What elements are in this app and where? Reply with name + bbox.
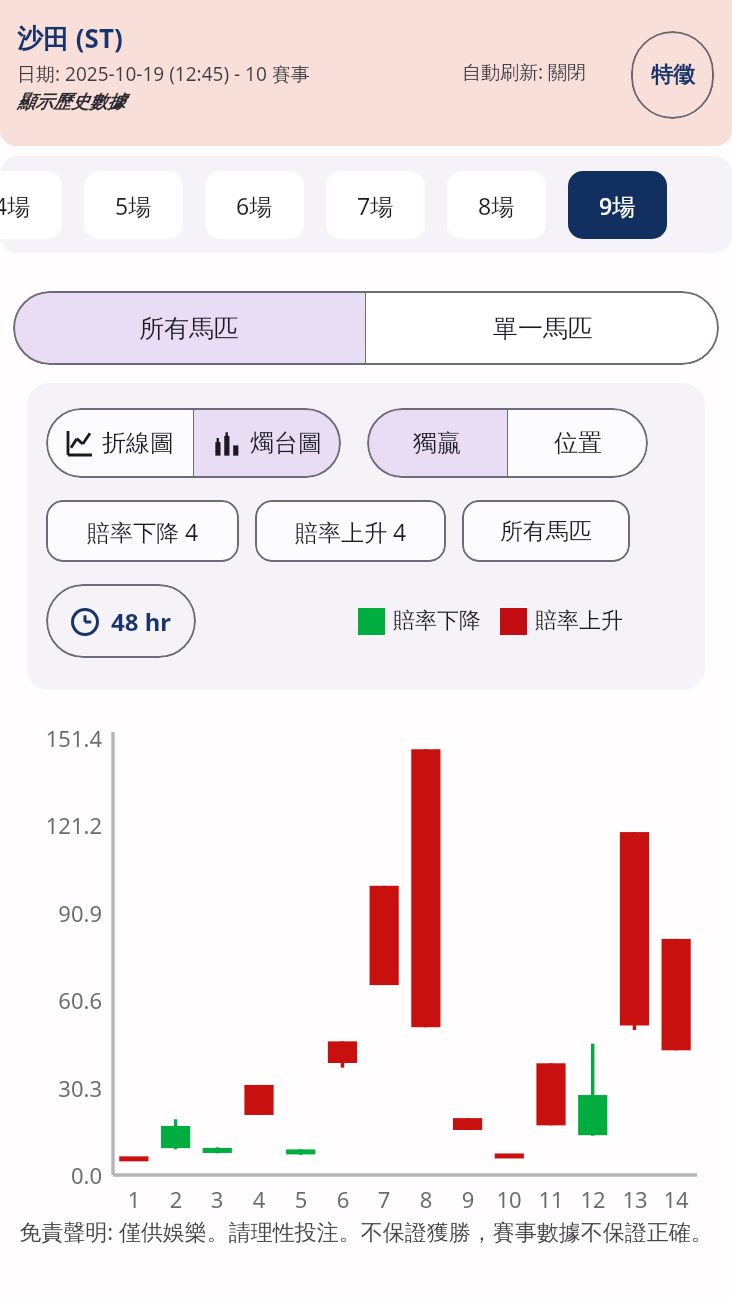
staticText: 7場 — [357, 190, 394, 221]
staticText: 6場 — [236, 190, 273, 221]
staticText: 賠率上升 4 — [295, 516, 407, 547]
staticText: 4場 — [0, 190, 31, 221]
staticText: 自動刷新: 關閉 — [462, 59, 587, 85]
staticText: 4 — [238, 1184, 280, 1214]
staticText: 13 — [614, 1184, 656, 1214]
staticText: 7 — [363, 1184, 405, 1214]
staticText: 8場 — [478, 190, 515, 221]
staticText: 6 — [322, 1184, 364, 1214]
staticText: 151.4 — [18, 723, 102, 753]
button[interactable]: 燭台圖 — [194, 408, 341, 478]
button[interactable]: 所有馬匹 — [13, 291, 365, 365]
button[interactable]: 單一馬匹 — [366, 291, 719, 365]
staticText: 所有馬匹 — [139, 313, 239, 344]
staticText: 燭台圖 — [250, 428, 322, 458]
staticText: 所有馬匹 — [500, 517, 592, 546]
staticText: 賠率下降 — [393, 607, 481, 635]
staticText: 0.0 — [18, 1160, 102, 1190]
staticText: 免責聲明: 僅供娛樂。請理性投注。不保證獲勝，賽事數據不保證正確。 — [18, 1216, 714, 1246]
button[interactable]: 6場 — [205, 171, 304, 239]
staticText: 12 — [572, 1184, 614, 1214]
staticText: 60.6 — [18, 985, 102, 1015]
button[interactable]: 48 hr — [46, 584, 196, 658]
button[interactable]: 7場 — [326, 171, 425, 239]
button[interactable]: 5場 — [84, 171, 183, 239]
staticText: 賠率上升 — [535, 607, 623, 635]
button[interactable]: 獨贏 — [367, 408, 507, 478]
staticText: 48 hr — [111, 605, 172, 638]
staticText: 日期: 2025-10-19 (12:45) - 10 賽事 — [17, 61, 310, 87]
button[interactable]: 賠率上升 4 — [255, 500, 446, 562]
button[interactable]: 9場 — [568, 171, 667, 239]
staticText: 5場 — [115, 190, 152, 221]
staticText: 1 — [113, 1184, 155, 1214]
staticText: 位置 — [554, 428, 602, 458]
staticText: 折線圖 — [102, 428, 174, 458]
staticText: 顯示歷史數據 — [17, 91, 125, 114]
staticText: 沙田 (ST) — [17, 20, 123, 56]
staticText: 30.3 — [18, 1073, 102, 1103]
staticText: 14 — [655, 1184, 697, 1214]
staticText: 9場 — [599, 190, 636, 221]
staticText: 11 — [530, 1184, 572, 1214]
staticText: 3 — [196, 1184, 238, 1214]
staticText: 90.9 — [18, 898, 102, 928]
staticText: 2 — [155, 1184, 197, 1214]
staticText: 賠率下降 4 — [87, 516, 199, 547]
button[interactable]: 折線圖 — [46, 408, 193, 478]
button[interactable]: 4場 — [0, 171, 62, 239]
button[interactable]: 所有馬匹 — [462, 500, 630, 562]
staticText: 9 — [447, 1184, 489, 1214]
button[interactable]: 特徵 — [631, 31, 714, 119]
button[interactable]: 賠率下降 4 — [46, 500, 239, 562]
button[interactable]: 8場 — [447, 171, 546, 239]
staticText: 特徵 — [651, 61, 695, 89]
staticText: 獨贏 — [413, 428, 461, 458]
staticText: 10 — [488, 1184, 530, 1214]
staticText: 121.2 — [18, 810, 102, 840]
staticText: 5 — [280, 1184, 322, 1214]
button[interactable]: 位置 — [508, 408, 648, 478]
staticText: 8 — [405, 1184, 447, 1214]
staticText: 單一馬匹 — [493, 313, 593, 344]
